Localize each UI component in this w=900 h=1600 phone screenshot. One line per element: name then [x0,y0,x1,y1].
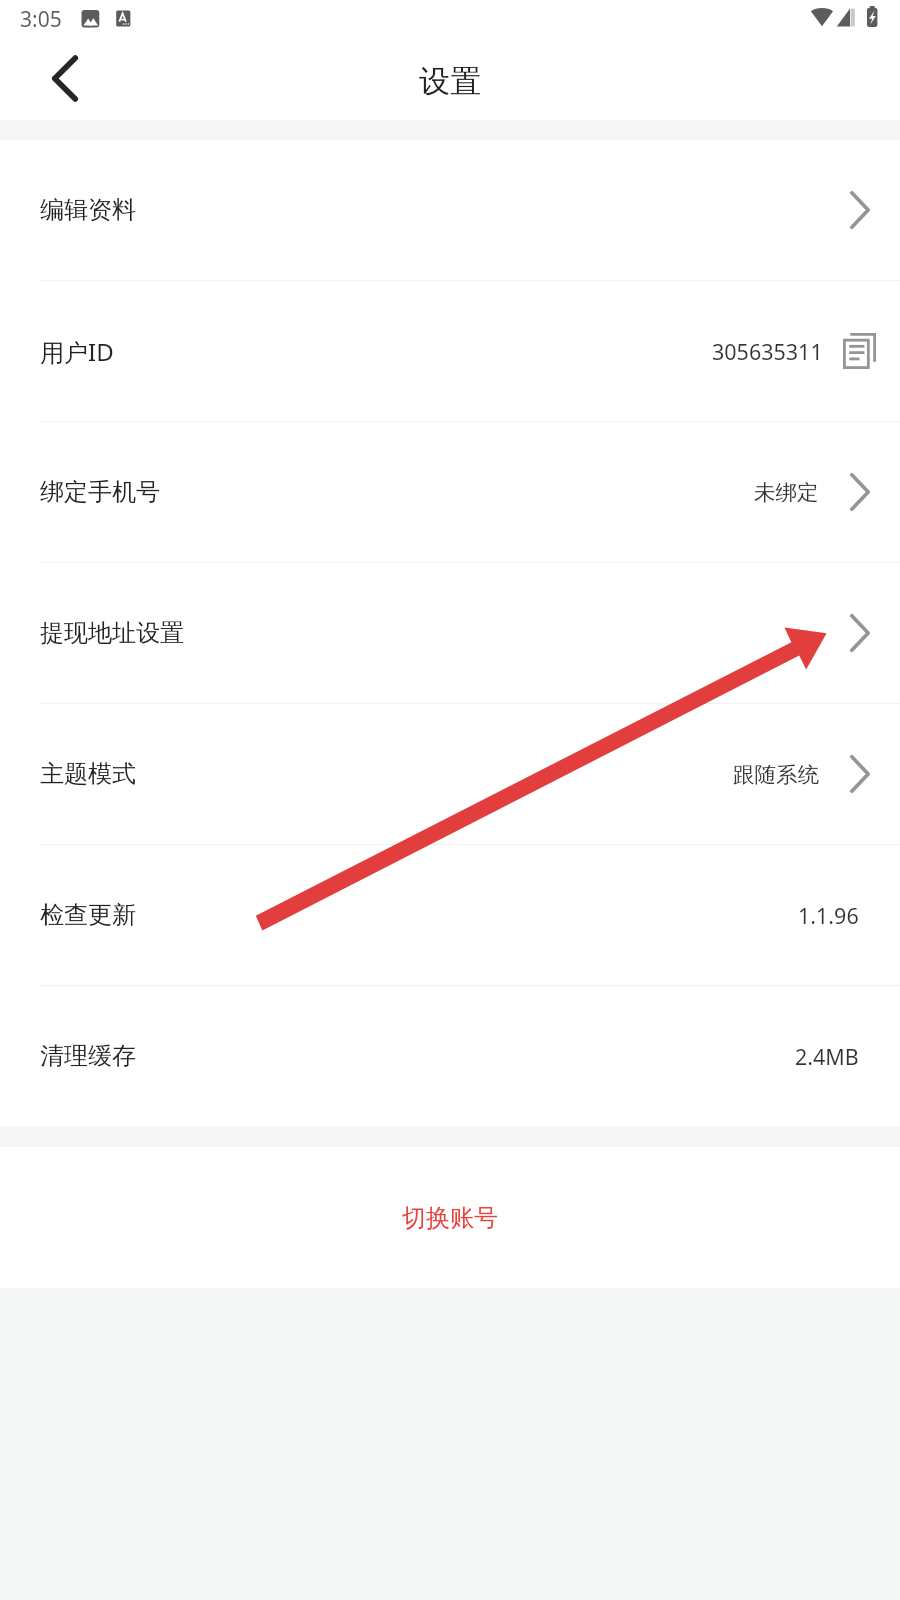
button[interactable]: 用户ID [0,281,900,421]
button[interactable]: Back [25,46,105,120]
button[interactable]: 切换账号 [0,1147,900,1288]
staticText: 设置 [419,62,481,101]
staticText: 提现地址设置 [40,618,184,648]
button[interactable]: 提现地址设置 [0,563,900,703]
button[interactable]: 主题模式 [0,704,900,844]
staticText: 跟随系统 [733,761,819,788]
button[interactable]: 复制用户ID [823,311,900,391]
button[interactable]: 编辑资料 [0,140,900,280]
staticText: 2.4MB [795,1042,859,1071]
button[interactable]: 清理缓存 [0,986,900,1126]
staticText: 未绑定 [754,479,819,506]
staticText: 绑定手机号 [40,477,160,507]
button[interactable]: 检查更新 [0,845,900,985]
staticText: 3:05 [20,5,62,34]
staticText: 清理缓存 [40,1041,136,1071]
staticText: 305635311 [712,337,823,366]
staticText: 1.1.96 [798,901,859,930]
staticText: 用户ID [40,335,114,368]
button[interactable]: 绑定手机号 [0,422,900,562]
staticText: 切换账号 [402,1203,498,1233]
staticText: 检查更新 [40,900,136,930]
staticText: 编辑资料 [40,195,136,225]
staticText: 主题模式 [40,759,136,789]
